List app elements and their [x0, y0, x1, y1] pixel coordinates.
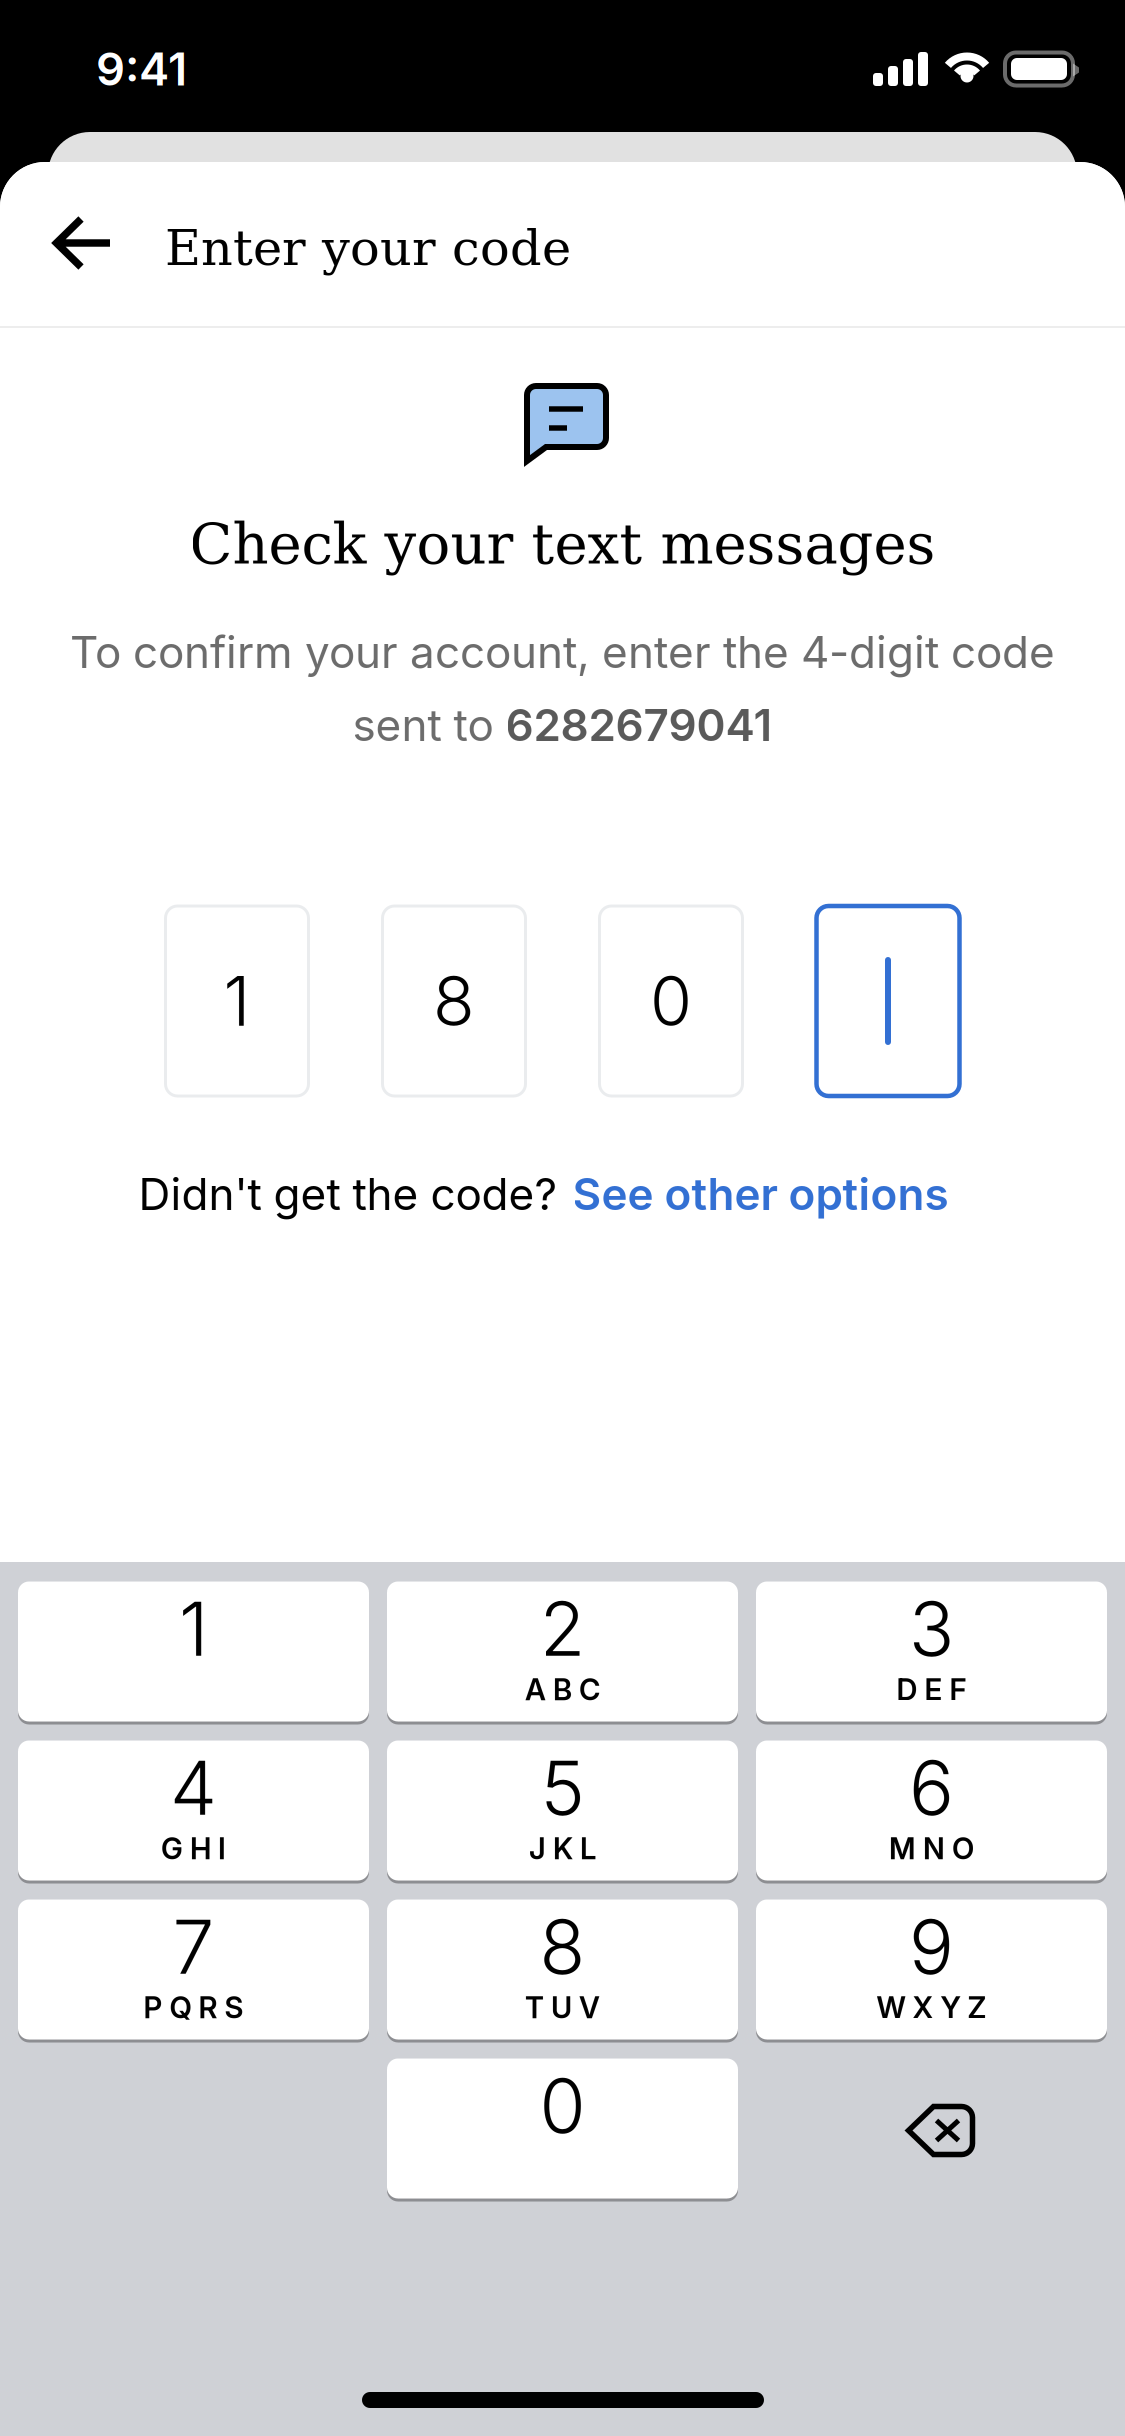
- button[interactable]: 5: [387, 1739, 738, 1882]
- button[interactable]: See other options: [572, 1167, 948, 1221]
- staticText: P Q R S: [143, 1990, 243, 2025]
- staticText: 5: [540, 1742, 584, 1833]
- staticText: M N O: [889, 1831, 974, 1866]
- staticText: D E F: [896, 1672, 966, 1707]
- staticText: T U V: [525, 1990, 600, 2025]
- staticText: 4: [170, 1742, 217, 1833]
- staticText: W X Y Z: [876, 1990, 986, 2025]
- staticText: Enter your code: [165, 219, 571, 277]
- staticText: 1: [223, 960, 250, 1042]
- staticText: G H I: [161, 1831, 226, 1866]
- staticText: 6: [909, 1742, 954, 1833]
- button[interactable]: 7: [18, 1898, 369, 2041]
- button[interactable]: 6: [756, 1739, 1107, 1882]
- staticText: 9:41: [96, 42, 187, 96]
- staticText: 0: [650, 960, 692, 1042]
- button[interactable]: [756, 2057, 1107, 2200]
- staticText: Check your text messages: [189, 511, 935, 577]
- button[interactable]: 8: [387, 1898, 738, 2041]
- staticText: See other options: [572, 1167, 948, 1221]
- staticText: J K L: [529, 1831, 596, 1866]
- staticText: 1: [179, 1583, 208, 1674]
- staticText: 0: [539, 2060, 585, 2151]
- staticText: 8: [433, 960, 475, 1042]
- staticText: 7: [172, 1901, 214, 1992]
- staticText: To confirm your account, enter the 4-dig…: [70, 625, 1055, 679]
- button[interactable]: [22, 188, 142, 298]
- staticText: A B C: [525, 1672, 600, 1707]
- button[interactable]: 3: [756, 1580, 1107, 1723]
- staticText: Didn't get the code?: [138, 1167, 556, 1221]
- button[interactable]: 2: [387, 1580, 738, 1723]
- staticText: 9: [909, 1901, 954, 1992]
- staticText: 6282679041: [505, 698, 772, 752]
- button[interactable]: 4: [18, 1739, 369, 1882]
- staticText: sent to: [352, 698, 505, 752]
- button[interactable]: [816, 906, 959, 1096]
- button[interactable]: 1: [18, 1580, 369, 1723]
- staticText: 2: [539, 1583, 585, 1674]
- button[interactable]: 1: [165, 906, 308, 1096]
- staticText: 3: [909, 1583, 954, 1674]
- button[interactable]: 9: [756, 1898, 1107, 2041]
- button[interactable]: 0: [599, 906, 742, 1096]
- button[interactable]: 8: [382, 906, 525, 1096]
- button[interactable]: 0: [387, 2057, 738, 2200]
- staticText: 8: [539, 1901, 585, 1992]
